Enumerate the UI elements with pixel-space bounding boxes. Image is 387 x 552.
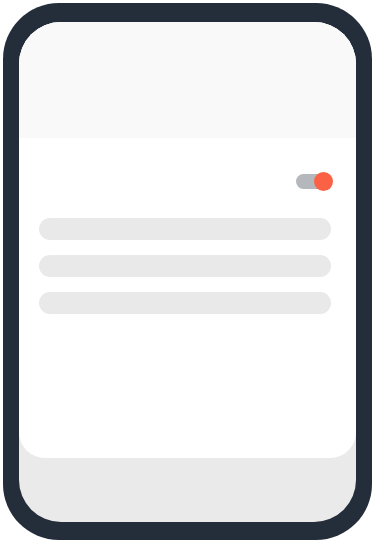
button[interactable]: Toggle setting [296,172,333,191]
button[interactable] [19,22,356,138]
